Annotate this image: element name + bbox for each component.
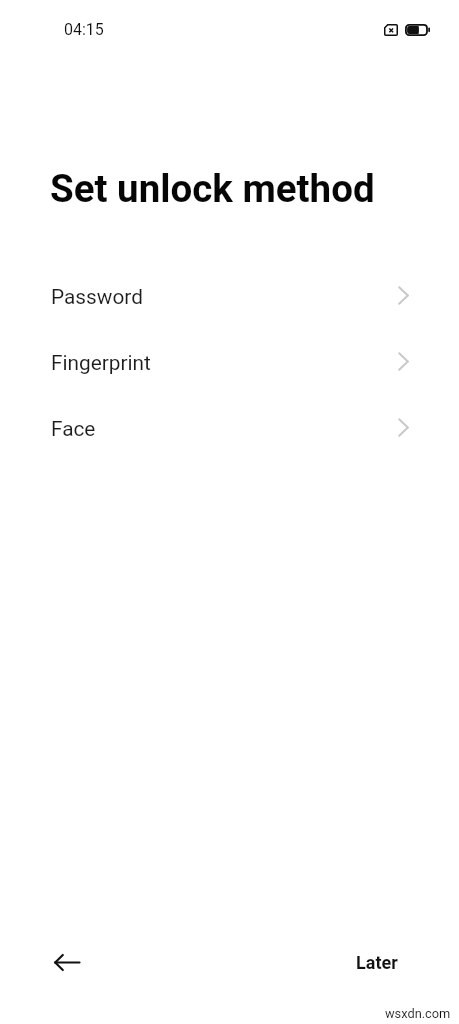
staticText: 04:15	[64, 20, 104, 39]
button[interactable]: Fingerprint	[0, 330, 459, 396]
staticText: Set unlock method	[50, 166, 375, 211]
staticText: Fingerprint	[51, 351, 398, 375]
button[interactable]: Face	[0, 396, 459, 462]
staticText: wsxdn.com	[385, 1006, 451, 1021]
staticText: Face	[51, 417, 398, 441]
staticText: Later	[356, 952, 398, 973]
button[interactable]: Later	[352, 944, 402, 981]
button[interactable]: Password	[0, 264, 459, 330]
staticText: Password	[51, 285, 398, 309]
button[interactable]: Back	[43, 938, 91, 986]
